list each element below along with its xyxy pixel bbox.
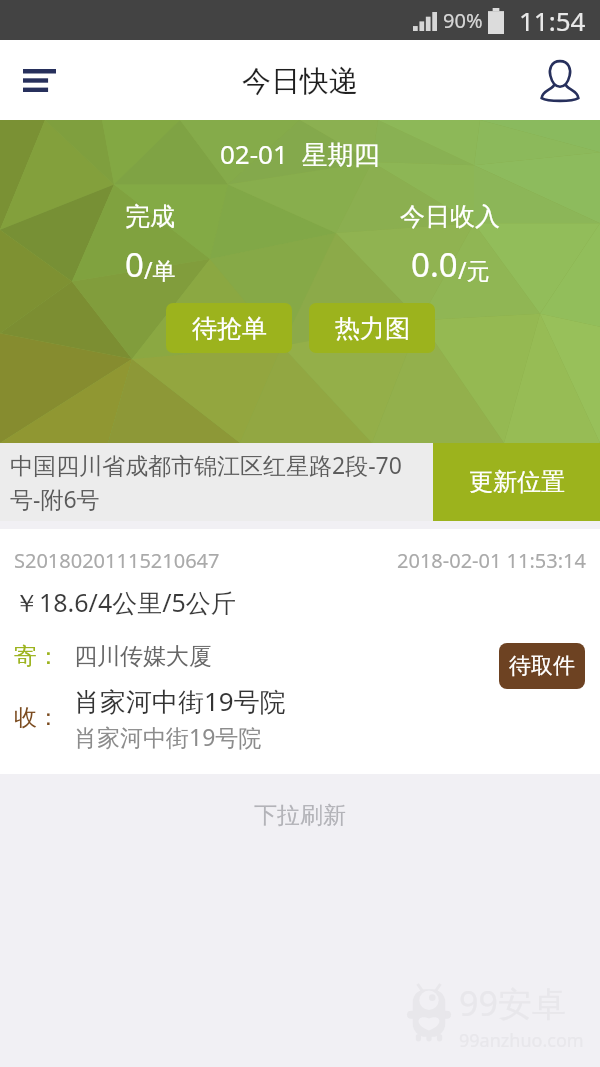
button[interactable]: 待抢单 (166, 303, 292, 353)
staticText: 中国四川省成都市锦江区红星路2段-70号-附6号 (10, 449, 420, 515)
staticText: 待抢单 (192, 313, 267, 344)
button[interactable]: Profile (528, 48, 592, 112)
button[interactable]: 热力图 (309, 303, 435, 353)
staticText: 收： (14, 703, 60, 732)
staticText: 0.0 (411, 242, 458, 287)
staticText: ￥18.6/4公里/5公斤 (14, 585, 236, 619)
staticText: 今日快递 (242, 63, 358, 100)
staticText: 今日收入 (400, 201, 500, 232)
button[interactable]: 待取件 (499, 643, 585, 689)
button[interactable]: 更新位置 (433, 443, 600, 521)
staticText: S20180201115210647 (14, 547, 220, 574)
staticText: 11:54 (519, 3, 586, 38)
button[interactable]: 中国四川省成都市锦江区红星路2段-70号-附6号 (0, 443, 433, 521)
staticText: 下拉刷新 (254, 801, 346, 830)
staticText: 2018-02-01 11:53:14 (397, 547, 586, 574)
staticText: 0 (125, 242, 144, 287)
staticText: 99anzhuo.com (459, 1028, 584, 1053)
staticText: /元 (458, 254, 490, 285)
staticText: 肖家河中街19号院 (74, 683, 286, 719)
staticText: 热力图 (335, 313, 410, 344)
button[interactable]: S20180201115210647 (0, 529, 600, 774)
staticText: 完成 (125, 201, 175, 232)
staticText: 02-01 星期四 (220, 136, 380, 172)
staticText: 更新位置 (469, 467, 565, 497)
staticText: 90% (443, 7, 483, 34)
staticText: 寄： (14, 642, 60, 671)
staticText: /单 (144, 254, 176, 285)
button[interactable]: Menu (7, 48, 71, 112)
staticText: 99安卓 (459, 980, 566, 1026)
staticText: 四川传媒大厦 (74, 642, 212, 671)
staticText: 待取件 (509, 652, 575, 680)
staticText: 肖家河中街19号院 (74, 721, 262, 752)
